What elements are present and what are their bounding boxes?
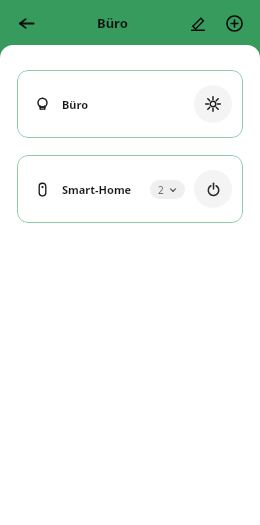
button[interactable]: Edit [182,7,214,39]
staticText: Smart-Home [62,182,150,197]
staticText: Büro [62,97,194,112]
button[interactable]: Add [218,7,250,39]
button[interactable]: Back [10,7,42,39]
button[interactable]: 2 [150,180,185,199]
button[interactable]: Smart-Home [17,155,243,223]
button[interactable]: Brightness [194,85,232,123]
button[interactable]: Büro [17,70,243,138]
button[interactable]: Power [194,170,232,208]
staticText: 2 [158,183,164,197]
staticText: Büro [97,14,128,32]
